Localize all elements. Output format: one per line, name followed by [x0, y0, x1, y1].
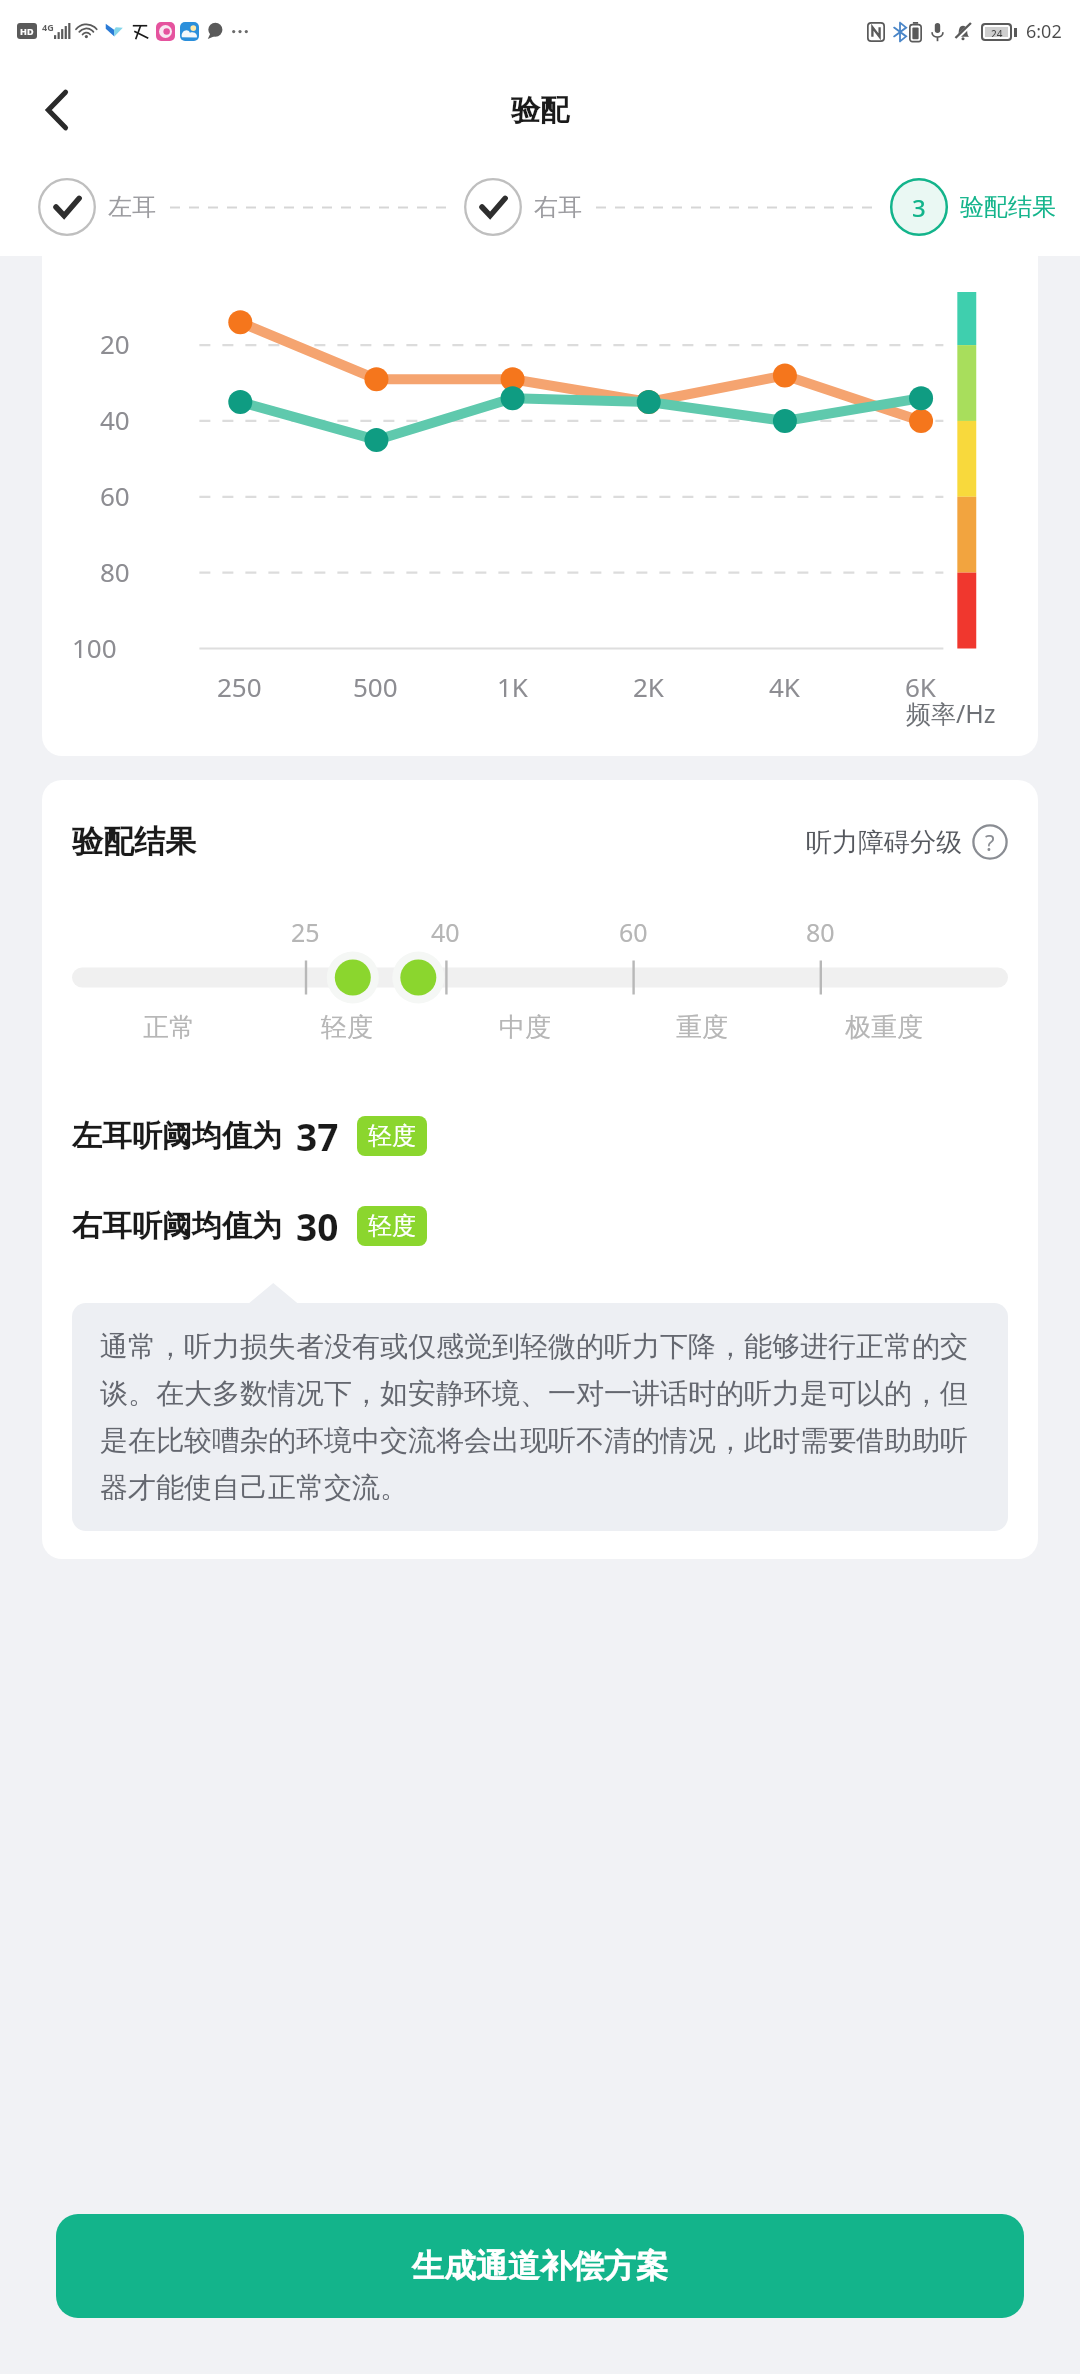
staticText: 中度 [499, 1011, 551, 1044]
staticText: 生成通道补偿方案 [412, 2246, 668, 2286]
staticText: 轻度 [368, 1211, 416, 1241]
staticText: HD [20, 25, 34, 37]
staticText: 右耳听阈均值为 [72, 1207, 282, 1245]
staticText: 80 [100, 554, 130, 589]
staticText: 轻度 [368, 1121, 416, 1151]
staticText: 3 [912, 191, 926, 224]
staticText: 听力障碍分级 [806, 826, 962, 859]
staticText: 2K [633, 669, 664, 704]
staticText: 37 [296, 1111, 339, 1161]
staticText: 重度 [676, 1011, 728, 1044]
button[interactable]: 3 [890, 178, 1056, 236]
staticText: 40 [100, 402, 130, 437]
staticText: 40 [431, 915, 460, 949]
button[interactable]: 听力障碍分级 [806, 824, 1008, 860]
staticText: 500 [353, 669, 398, 704]
staticText: 60 [100, 478, 130, 513]
staticText: 正常 [143, 1011, 195, 1044]
button[interactable]: 生成通道补偿方案 [56, 2214, 1024, 2318]
staticText: 左耳听阈均值为 [72, 1117, 282, 1155]
staticText: 极重度 [845, 1011, 923, 1044]
staticText: 60 [619, 915, 648, 949]
staticText: 频率/Hz [906, 696, 996, 730]
staticText: 轻度 [321, 1011, 373, 1044]
staticText: 1K [497, 669, 528, 704]
button[interactable]: 右耳 [464, 178, 582, 236]
button[interactable]: Back [30, 83, 84, 137]
staticText: 250 [217, 669, 262, 704]
staticText: ? [985, 827, 995, 857]
staticText: 通常，听力损失者没有或仅感觉到轻微的听力下降，能够进行正常的交谈。在大多数情况下… [100, 1329, 980, 1505]
staticText: 30 [296, 1201, 339, 1251]
staticText: 80 [806, 915, 835, 949]
staticText: 左耳 [108, 192, 156, 222]
staticText: 验配结果 [72, 822, 196, 861]
staticText: 6:02 [1026, 19, 1062, 44]
staticText: 100 [72, 630, 117, 665]
staticText: 20 [100, 326, 130, 361]
button[interactable]: 左耳 [38, 178, 156, 236]
staticText: 验配结果 [960, 192, 1056, 222]
staticText: 25 [291, 915, 320, 949]
staticText: 右耳 [534, 192, 582, 222]
staticText: 4K [769, 669, 800, 704]
staticText: 6K [905, 669, 936, 704]
staticText: 4G [42, 21, 54, 33]
staticText: 24 [991, 27, 1003, 37]
staticText: 验配 [511, 92, 569, 129]
